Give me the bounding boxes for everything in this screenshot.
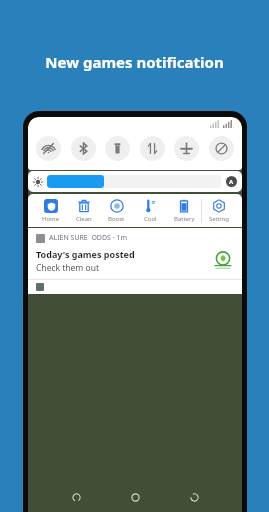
button[interactable]: Rotation lock xyxy=(209,136,234,161)
staticText: New games notification xyxy=(45,52,224,72)
staticText: ALIEN SURE ODDS · 1m xyxy=(49,233,127,243)
button[interactable]: Clean xyxy=(67,199,100,223)
button[interactable]: Auto brightness xyxy=(226,176,237,187)
staticText: Today's games posted xyxy=(36,248,135,260)
staticText: A xyxy=(229,178,234,186)
staticText: Clean xyxy=(76,215,92,223)
button[interactable]: Wi-Fi off xyxy=(36,136,61,161)
button[interactable]: Home xyxy=(124,486,146,508)
staticText: Cool xyxy=(144,215,157,223)
button[interactable]: Cool xyxy=(133,199,167,223)
staticText: Battery xyxy=(174,215,195,223)
button[interactable]: Boost xyxy=(100,199,133,223)
button[interactable]: Airplane mode xyxy=(174,136,199,161)
button[interactable]: Battery xyxy=(167,199,201,223)
staticText: Check them out xyxy=(36,262,99,274)
button[interactable]: Back xyxy=(65,486,87,508)
button[interactable]: Flashlight xyxy=(105,136,130,161)
staticText: Boost xyxy=(108,215,125,223)
staticText: Setting xyxy=(209,215,229,223)
button[interactable]: Home xyxy=(34,199,67,223)
button[interactable]: Setting xyxy=(202,199,236,223)
button[interactable]: Recents xyxy=(183,486,205,508)
staticText: Home xyxy=(42,215,60,223)
button[interactable]: Data usage xyxy=(140,136,165,161)
button[interactable]: Bluetooth xyxy=(71,136,96,161)
button[interactable]: Auto brightness xyxy=(28,171,242,192)
button[interactable]: ALIEN SURE ODDS · 1m xyxy=(28,228,242,279)
